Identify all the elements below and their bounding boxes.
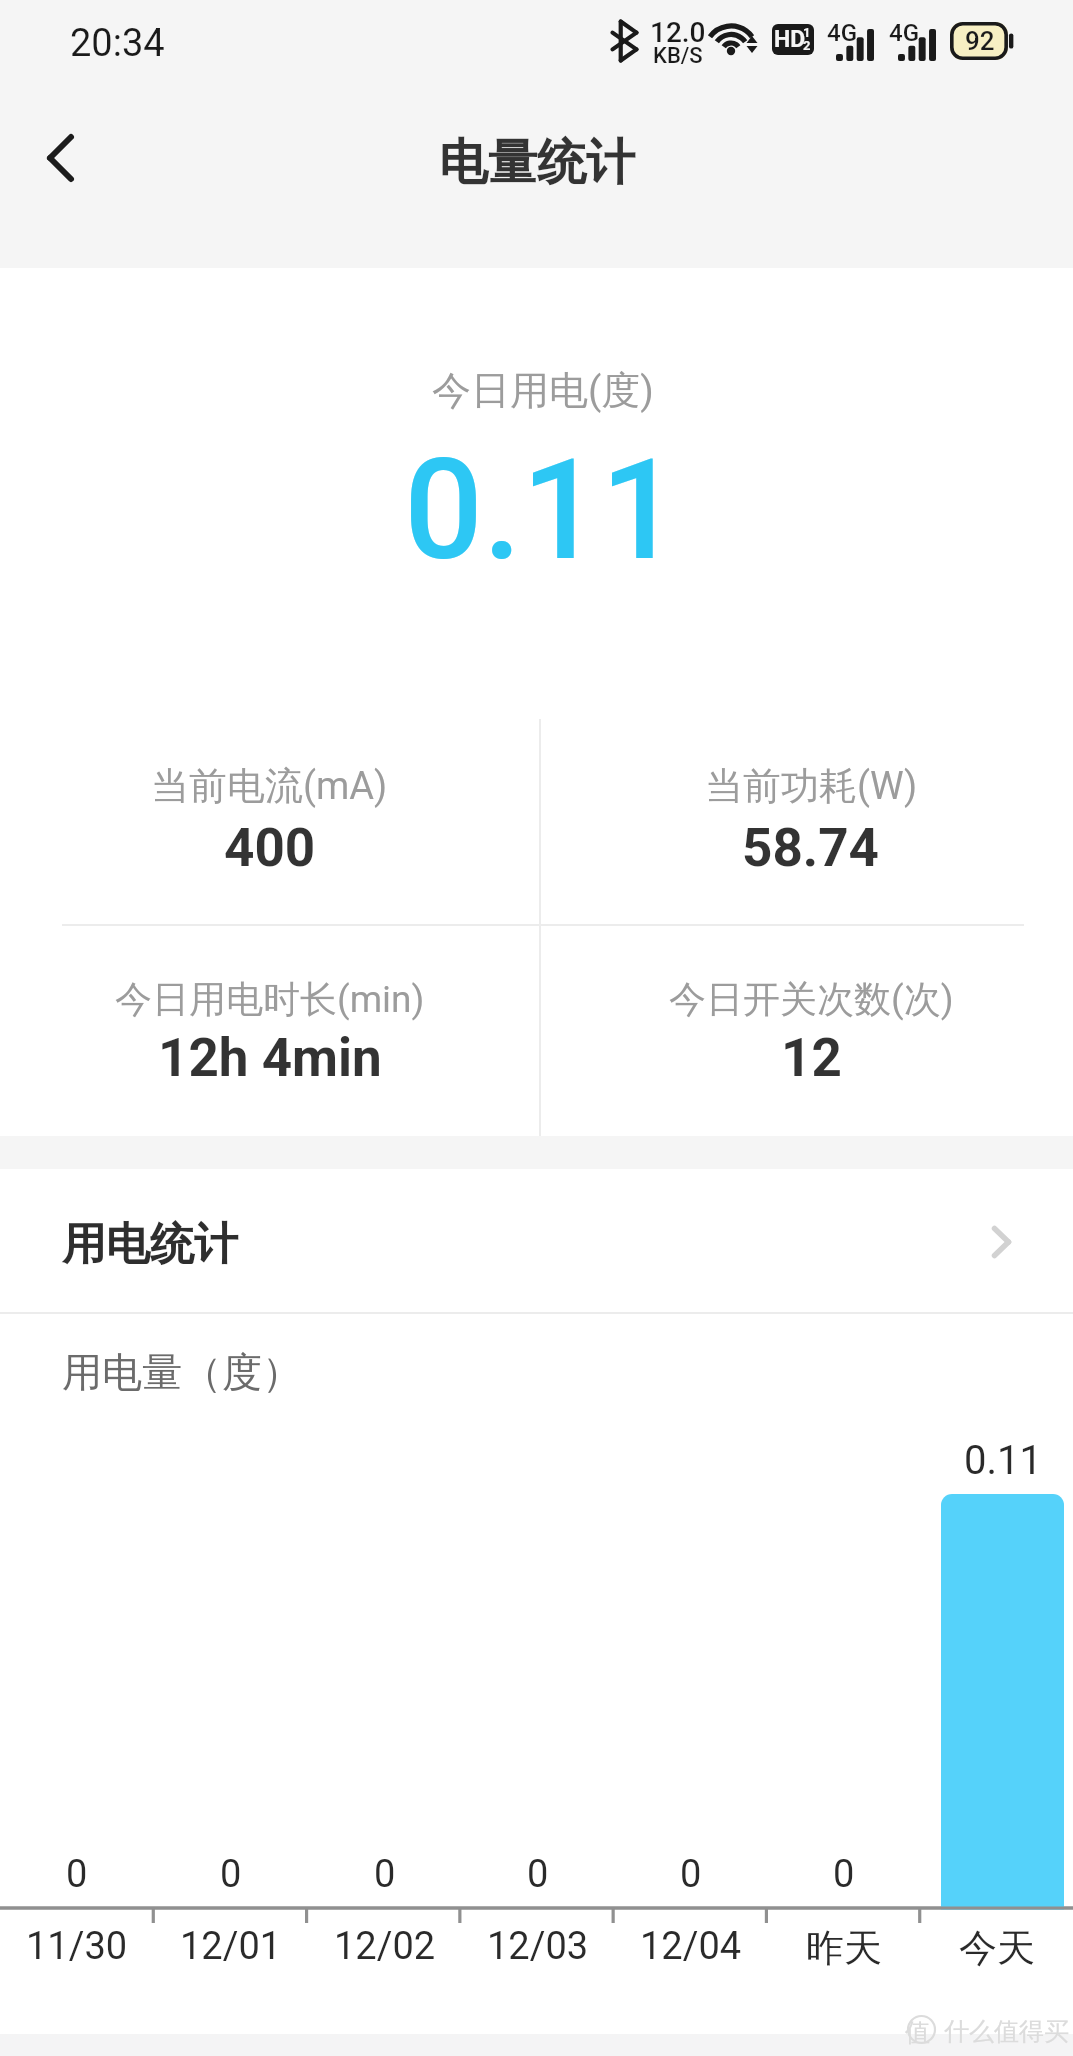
staticText: 0 [220, 1852, 242, 1897]
staticText: 12/04 [640, 1924, 742, 1969]
staticText: 11/30 [26, 1924, 128, 1969]
button[interactable]: 用电统计 [0, 1172, 1073, 1316]
staticText: 值 [905, 2017, 930, 2048]
staticText: 12/01 [180, 1924, 282, 1969]
staticText: 1 [803, 25, 811, 40]
staticText: 12/03 [487, 1924, 589, 1969]
staticText: 0 [527, 1852, 549, 1897]
staticText: 58.74 [742, 817, 880, 879]
staticText: 用电量（度） [62, 1347, 302, 1397]
staticText: 今天 [959, 1924, 1035, 1972]
staticText: 用电统计 [62, 1217, 238, 1272]
staticText: 0 [66, 1852, 88, 1897]
staticText: KB/S [653, 43, 703, 69]
staticText: 今日用电时长(min) [115, 976, 425, 1023]
staticText: HD [774, 26, 806, 53]
staticText: 12/02 [334, 1924, 436, 1969]
staticText: 0 [374, 1852, 396, 1897]
staticText: 400 [224, 817, 316, 879]
button[interactable]: 今日用电(度) [0, 268, 1073, 700]
button[interactable]: Back [0, 98, 120, 218]
staticText: 0.11 [404, 429, 680, 592]
staticText: 0 [680, 1852, 702, 1897]
staticText: 今日开关次数(次) [669, 976, 954, 1023]
staticText: 今日用电(度) [432, 366, 654, 415]
staticText: 4G [827, 19, 857, 47]
staticText: 12 [781, 1027, 842, 1089]
staticText: 0 [833, 1852, 855, 1897]
staticText: 什么值得买 [944, 2016, 1069, 2047]
staticText: 12.0 [650, 16, 706, 49]
staticText: 昨天 [806, 1924, 882, 1972]
staticText: 92 [965, 26, 995, 56]
staticText: 当前电流(mA) [151, 762, 388, 810]
staticText: 12h 4min [158, 1027, 382, 1089]
staticText: 20:34 [70, 21, 165, 66]
staticText: 当前功耗(W) [705, 762, 918, 810]
staticText: 2 [803, 38, 811, 53]
staticText: 电量统计 [439, 132, 635, 194]
staticText: 0.11 [964, 1437, 1042, 1484]
staticText: 4G [889, 19, 919, 47]
